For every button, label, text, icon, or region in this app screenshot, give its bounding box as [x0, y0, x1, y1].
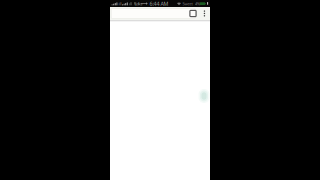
staticText: 4%: [195, 1, 200, 6]
button[interactable]: More options: [199, 7, 210, 20]
staticText: Rjdks: [133, 1, 142, 6]
staticText: ıll: [118, 1, 121, 6]
staticText: 6:44 AM: [149, 0, 168, 7]
button[interactable]: Tabs: [187, 7, 199, 20]
staticText: Sweet: [182, 1, 192, 6]
button[interactable]: Search or type URL: [110, 8, 195, 18]
staticText: ıll: [129, 1, 132, 6]
